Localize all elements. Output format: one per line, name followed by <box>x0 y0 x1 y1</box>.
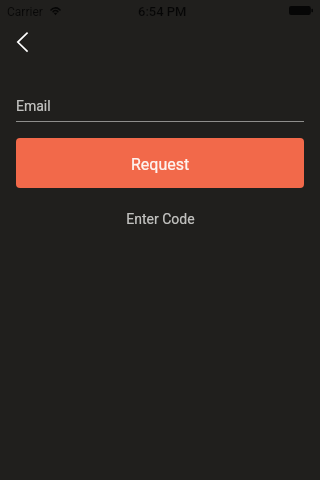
button[interactable]: Back <box>2 20 46 64</box>
staticText: Email <box>16 98 51 114</box>
button[interactable]: Enter Code <box>104 205 217 233</box>
button[interactable]: Request <box>16 138 304 188</box>
staticText: 6:54 PM <box>138 4 187 19</box>
staticText: Carrier <box>7 5 43 19</box>
staticText: Enter Code <box>126 211 195 227</box>
staticText: Request <box>131 155 190 174</box>
button[interactable]: Email <box>16 98 304 126</box>
